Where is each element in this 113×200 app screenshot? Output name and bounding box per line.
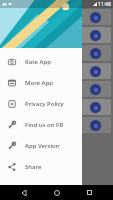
button[interactable]: [0, 0, 82, 48]
button[interactable]: More App: [0, 72, 82, 93]
button[interactable]: [2, 99, 111, 115]
button[interactable]: [2, 117, 111, 133]
button[interactable]: Privacy Policy: [0, 93, 82, 114]
button[interactable]: [2, 63, 111, 79]
button[interactable]: Find us on FB: [0, 114, 82, 135]
staticText: 11:48: [98, 1, 111, 8]
button[interactable]: Share: [0, 156, 82, 177]
button[interactable]: Recent apps: [81, 185, 97, 200]
button[interactable]: App Version: [0, 135, 82, 156]
button[interactable]: [2, 81, 111, 97]
staticText: Rate App: [25, 58, 51, 66]
staticText: Share: [25, 163, 42, 171]
button[interactable]: [2, 45, 111, 61]
button[interactable]: Back: [16, 185, 32, 200]
button[interactable]: [2, 9, 111, 25]
staticText: Privacy Policy: [25, 100, 64, 108]
button[interactable]: [2, 27, 111, 43]
staticText: More App: [25, 79, 53, 87]
button[interactable]: Home: [49, 185, 65, 200]
staticText: Find us on FB: [25, 121, 64, 129]
button[interactable]: Rate App: [0, 51, 82, 72]
staticText: App Version: [25, 142, 60, 150]
